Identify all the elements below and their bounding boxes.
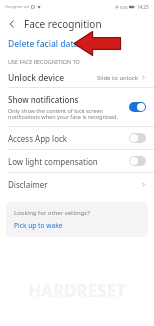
- button[interactable]: Show notifications: [0, 88, 154, 126]
- button[interactable]: Access App lock: [0, 127, 154, 149]
- staticText: Face recognition: [24, 17, 102, 31]
- staticText: Only show the content of lock screen not…: [8, 107, 125, 121]
- staticText: Show notifications: [8, 94, 79, 105]
- staticText: 14:25: [137, 4, 149, 10]
- button[interactable]: Looking for other settings?: [6, 202, 148, 237]
- button[interactable]: Disclaimer: [0, 173, 154, 195]
- staticText: Disclaimer: [8, 179, 141, 190]
- staticText: Slide to unlock: [97, 74, 139, 82]
- staticText: HARDRESET: [28, 279, 126, 302]
- button[interactable]: Toggle: [129, 102, 146, 112]
- button[interactable]: Delete facial data: [0, 34, 154, 54]
- staticText: Hungnee.vol: [5, 4, 29, 9]
- staticText: Pick up to wake: [14, 221, 63, 230]
- staticText: USE FACE RECOGNITION TO: [8, 58, 80, 65]
- staticText: 52%: [120, 5, 128, 10]
- button[interactable]: Back: [4, 16, 20, 32]
- staticText: Unlock device: [8, 72, 65, 84]
- staticText: Low light compensation: [8, 156, 129, 167]
- staticText: Delete facial data: [8, 38, 79, 50]
- button[interactable]: Toggle: [129, 156, 146, 166]
- staticText: Access App lock: [8, 133, 129, 144]
- button[interactable]: Unlock device: [0, 68, 154, 87]
- staticText: Looking for other settings?: [14, 209, 90, 217]
- button[interactable]: Low light compensation: [0, 150, 154, 172]
- button[interactable]: Toggle: [129, 133, 146, 143]
